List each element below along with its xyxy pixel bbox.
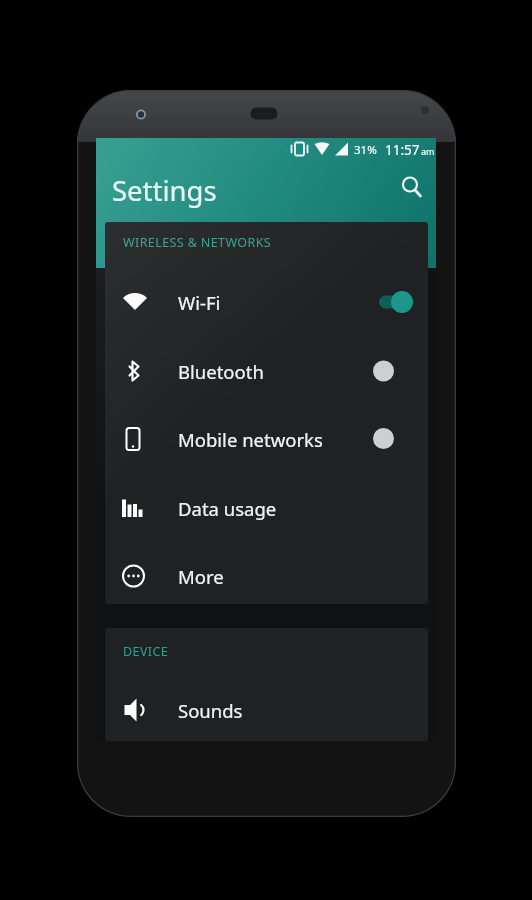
- button[interactable]: [394, 170, 430, 206]
- button[interactable]: Mobile networks: [105, 405, 428, 473]
- button[interactable]: More: [105, 542, 428, 604]
- staticText: Bluetooth: [178, 359, 264, 384]
- staticText: WIRELESS & NETWORKS: [123, 234, 272, 251]
- staticText: Sounds: [178, 698, 243, 723]
- staticText: Mobile networks: [178, 427, 323, 452]
- staticText: Data usage: [178, 496, 277, 521]
- button[interactable]: Data usage: [105, 474, 428, 542]
- staticText: 31%: [354, 142, 377, 158]
- button[interactable]: Bluetooth: [105, 337, 428, 405]
- staticText: Settings: [112, 172, 217, 209]
- staticText: 11:57: [385, 141, 420, 159]
- staticText: Wi-Fi: [178, 290, 221, 315]
- staticText: More: [178, 564, 224, 589]
- staticText: am: [421, 145, 435, 157]
- staticText: DEVICE: [123, 643, 169, 660]
- button[interactable]: Wi-Fi: [105, 268, 428, 336]
- button[interactable]: Sounds: [105, 676, 428, 741]
